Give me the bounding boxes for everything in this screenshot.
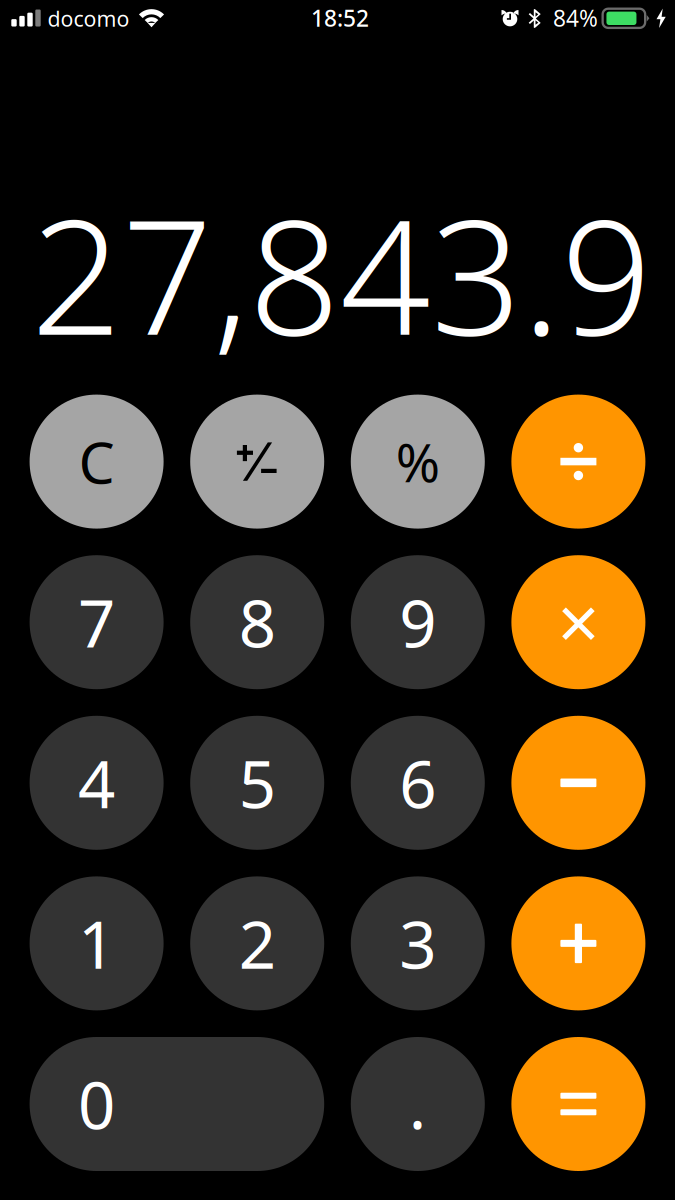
button[interactable]: 7 bbox=[30, 555, 164, 689]
button[interactable]: Decimal point bbox=[351, 1037, 485, 1171]
staticText: 2 bbox=[239, 900, 276, 987]
button[interactable]: 0 bbox=[30, 1037, 324, 1171]
button[interactable]: Divide bbox=[511, 395, 645, 529]
staticText: 7 bbox=[78, 579, 115, 666]
staticText: docomo bbox=[47, 4, 129, 33]
button[interactable]: 6 bbox=[351, 716, 485, 850]
button[interactable]: Equals bbox=[511, 1037, 645, 1171]
staticText: 4 bbox=[78, 739, 115, 826]
button[interactable]: 5 bbox=[190, 716, 324, 850]
staticText: % bbox=[396, 426, 440, 497]
staticText: 18:52 bbox=[311, 3, 369, 33]
staticText: 6 bbox=[399, 739, 436, 826]
staticText: 9 bbox=[399, 579, 436, 666]
staticText: C bbox=[79, 423, 115, 500]
button[interactable]: 2 bbox=[190, 876, 324, 1010]
staticText: 3 bbox=[399, 900, 436, 987]
button[interactable]: 3 bbox=[351, 876, 485, 1010]
staticText: 8 bbox=[239, 579, 276, 666]
staticText: 27,843.9 bbox=[31, 168, 652, 379]
button[interactable]: Clear bbox=[30, 395, 164, 529]
button[interactable]: Percent bbox=[351, 395, 485, 529]
button[interactable]: Toggle sign bbox=[190, 395, 324, 529]
staticText: . bbox=[409, 1061, 427, 1147]
button[interactable]: 4 bbox=[30, 716, 164, 850]
staticText: 1 bbox=[78, 900, 115, 987]
button[interactable]: Add bbox=[511, 876, 645, 1010]
button[interactable]: 9 bbox=[351, 555, 485, 689]
staticText: 84% bbox=[553, 3, 598, 33]
staticText: 5 bbox=[239, 739, 276, 826]
staticText: 0 bbox=[78, 1061, 115, 1147]
button[interactable]: Multiply bbox=[511, 555, 645, 689]
button[interactable]: Subtract bbox=[511, 716, 645, 850]
button[interactable]: 1 bbox=[30, 876, 164, 1010]
button[interactable]: 8 bbox=[190, 555, 324, 689]
